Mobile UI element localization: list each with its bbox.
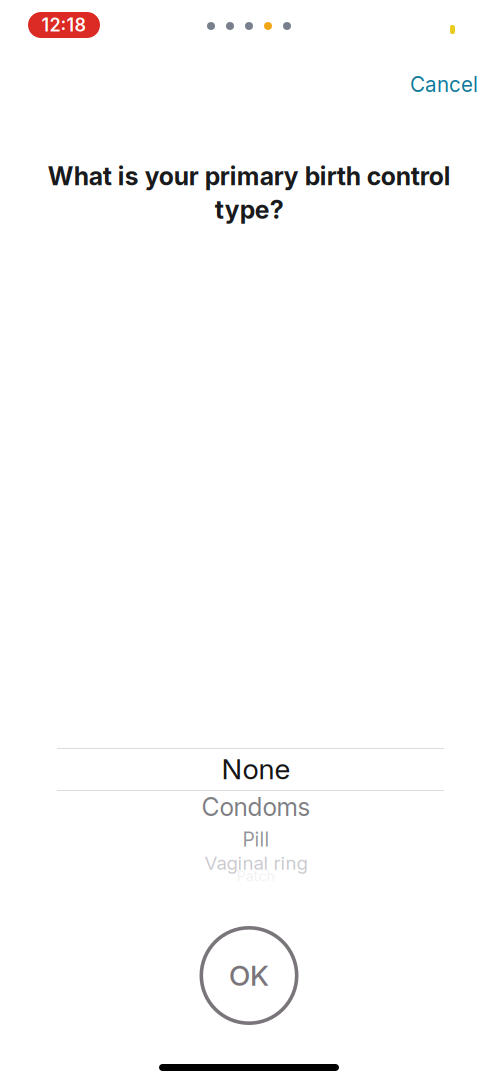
- staticText: Pill: [242, 828, 269, 851]
- staticText: Patch: [236, 867, 275, 885]
- staticText: None: [221, 752, 290, 786]
- staticText: 12:18: [41, 14, 86, 36]
- staticText: Condoms: [201, 792, 310, 822]
- staticText: OK: [229, 959, 269, 992]
- staticText: Cancel: [410, 72, 478, 97]
- button[interactable]: OK: [199, 926, 298, 1025]
- button[interactable]: Cancel: [388, 62, 498, 107]
- staticText: What is your primary birth control type?: [47, 161, 450, 225]
- staticText: Vaginal ring: [204, 852, 307, 874]
